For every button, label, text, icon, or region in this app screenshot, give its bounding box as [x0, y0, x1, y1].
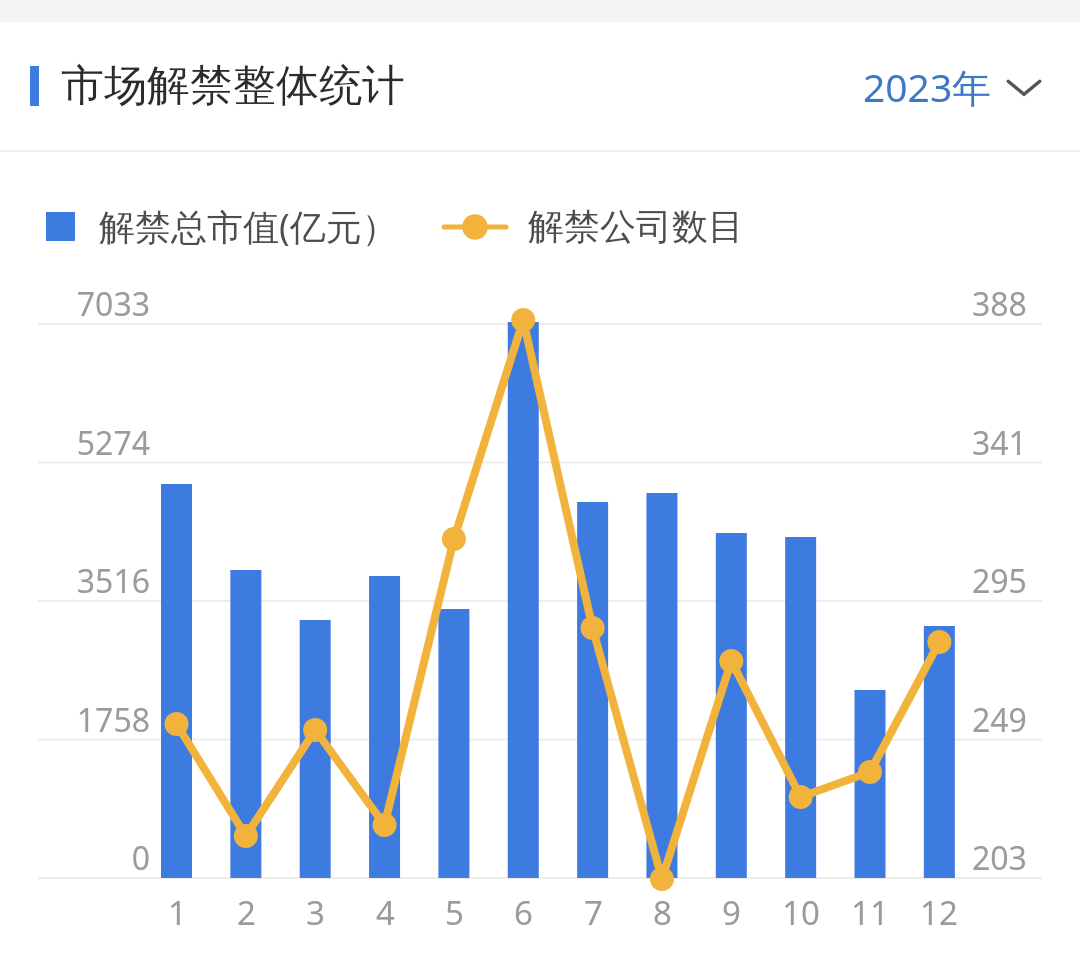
staticText: 341 — [972, 421, 1027, 465]
staticText: 2 — [237, 890, 256, 935]
staticText: 249 — [972, 698, 1027, 742]
button[interactable]: 2023年 — [859, 50, 1046, 123]
staticText: 7033 — [76, 282, 150, 326]
staticText: 解禁公司数目 — [528, 204, 744, 249]
staticText: 6 — [514, 890, 533, 935]
staticText: 11 — [851, 890, 889, 935]
staticText: 3516 — [76, 559, 150, 603]
staticText: 解禁总市值(亿元） — [99, 202, 398, 251]
other: Select year — [1006, 75, 1042, 99]
staticText: 1758 — [76, 698, 150, 742]
button[interactable]: 解禁公司数目 — [444, 204, 744, 249]
staticText: 市场解禁整体统计 — [61, 59, 405, 113]
staticText: 2023年 — [863, 60, 992, 113]
staticText: 5274 — [76, 421, 150, 465]
staticText: 9 — [722, 890, 741, 935]
staticText: 3 — [306, 890, 325, 935]
staticText: 0 — [131, 836, 150, 880]
button[interactable]: 解禁总市值(亿元） — [46, 202, 398, 251]
staticText: 295 — [972, 559, 1027, 603]
staticText: 8 — [653, 890, 672, 935]
staticText: 203 — [972, 836, 1027, 880]
staticText: 7 — [584, 890, 603, 935]
staticText: 10 — [782, 890, 820, 935]
staticText: 4 — [376, 890, 395, 935]
staticText: 5 — [445, 890, 464, 935]
staticText: 1 — [168, 890, 187, 935]
staticText: 388 — [972, 282, 1027, 326]
staticText: 12 — [920, 890, 958, 935]
